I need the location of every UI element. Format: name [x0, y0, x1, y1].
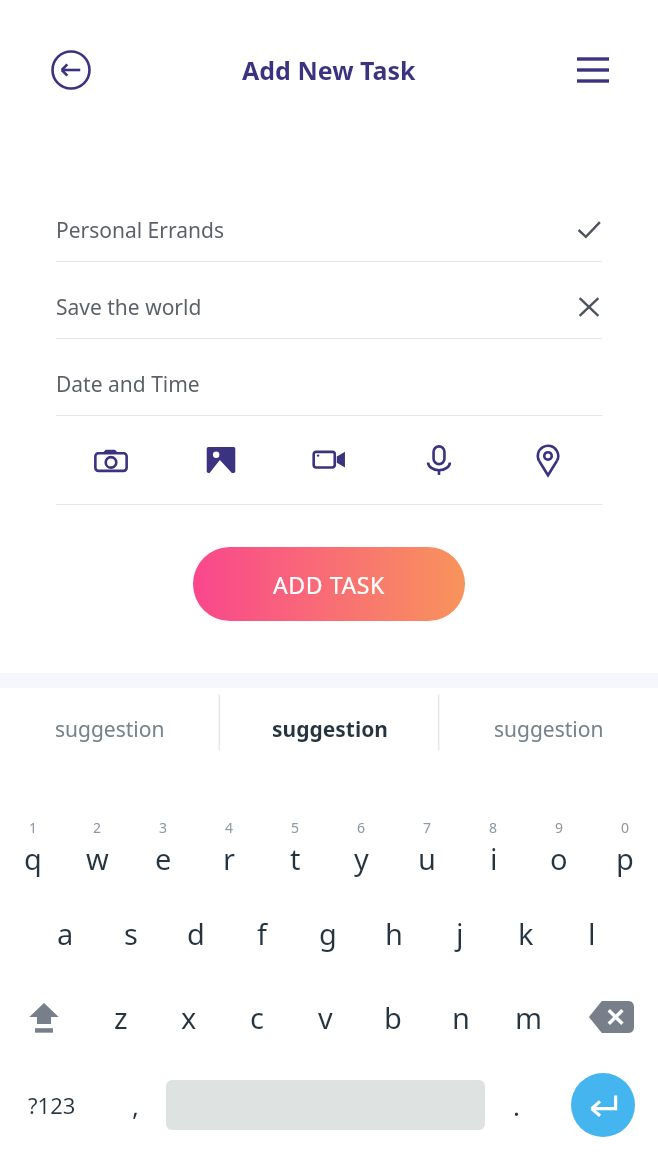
button[interactable]: . [485, 1068, 547, 1142]
staticText: j [456, 914, 464, 953]
button[interactable]: z [87, 988, 155, 1046]
button[interactable]: Date and Time [56, 361, 602, 416]
staticText: . [513, 1088, 520, 1123]
staticText: Save the world [56, 293, 576, 322]
staticText: 0 [621, 818, 630, 837]
button[interactable]: x [155, 988, 223, 1046]
button[interactable]: suggestion [220, 688, 439, 770]
staticText: a [57, 914, 74, 953]
button[interactable]: g [295, 906, 361, 960]
staticText: y [354, 839, 369, 878]
staticText: t [290, 839, 301, 878]
staticText: , [132, 1088, 139, 1123]
staticText: suggestion [272, 715, 388, 744]
staticText: g [319, 914, 337, 953]
button[interactable]: 0 [592, 818, 658, 878]
staticText: 9 [555, 818, 564, 837]
staticText: o [550, 839, 568, 878]
staticText: 1 [29, 818, 38, 837]
staticText: 4 [225, 818, 234, 837]
button[interactable]: Video [275, 416, 384, 504]
staticText: Personal Errands [56, 216, 576, 245]
button[interactable]: 6 [328, 818, 394, 878]
button[interactable]: s [98, 906, 163, 960]
button[interactable]: 2 [65, 818, 130, 878]
button[interactable]: Enter [547, 1068, 658, 1142]
button[interactable]: Shift [0, 988, 87, 1046]
staticText: u [418, 839, 436, 878]
staticText: n [452, 998, 470, 1037]
button[interactable]: c [223, 988, 291, 1046]
button[interactable]: 4 [196, 818, 262, 878]
staticText: suggestion [494, 715, 604, 744]
staticText: d [187, 914, 205, 953]
button[interactable]: j [427, 906, 493, 960]
staticText: Date and Time [56, 370, 602, 399]
button[interactable]: Camera [56, 416, 166, 504]
button[interactable]: k [493, 906, 559, 960]
staticText: k [518, 914, 534, 953]
staticText: i [490, 839, 498, 878]
button[interactable]: 5 [262, 818, 328, 878]
staticText: z [114, 998, 128, 1037]
button[interactable]: h [361, 906, 427, 960]
button[interactable]: Backspace [563, 988, 658, 1046]
staticText: s [124, 914, 138, 953]
button[interactable]: , [104, 1068, 166, 1142]
staticText: v [318, 998, 333, 1037]
staticText: f [257, 914, 267, 953]
button[interactable]: 3 [130, 818, 196, 878]
button[interactable]: b [359, 988, 427, 1046]
button[interactable]: ADD TASK [193, 547, 465, 621]
button[interactable]: Menu [564, 41, 622, 99]
button[interactable]: 8 [460, 818, 526, 878]
button[interactable]: Personal Errands [56, 207, 602, 262]
staticText: b [384, 998, 402, 1037]
button[interactable]: v [291, 988, 359, 1046]
button[interactable]: 1 [0, 818, 65, 878]
staticText: 8 [489, 818, 498, 837]
staticText: 7 [423, 818, 432, 837]
staticText: p [616, 839, 634, 878]
staticText: 2 [93, 818, 102, 837]
button[interactable]: Location [493, 416, 602, 504]
button[interactable]: 7 [394, 818, 460, 878]
staticText: 6 [357, 818, 366, 837]
button[interactable]: a [33, 906, 98, 960]
staticText: suggestion [55, 715, 165, 744]
staticText: 5 [291, 818, 300, 837]
button[interactable]: n [427, 988, 495, 1046]
button[interactable]: d [163, 906, 229, 960]
staticText: l [588, 914, 596, 953]
staticText: h [385, 914, 403, 953]
button[interactable]: Back [40, 39, 102, 101]
button[interactable]: Save the world [56, 284, 602, 339]
staticText: r [223, 839, 235, 878]
staticText: Add New Task [242, 53, 416, 87]
button[interactable]: ?123 [0, 1068, 104, 1142]
staticText: 3 [159, 818, 168, 837]
button[interactable]: suggestion [439, 688, 658, 770]
staticText: ADD TASK [273, 569, 385, 600]
staticText: e [155, 839, 172, 878]
button[interactable]: 9 [526, 818, 592, 878]
staticText: x [181, 998, 197, 1037]
button[interactable]: suggestion [0, 688, 220, 770]
button[interactable]: Gallery [166, 416, 275, 504]
button[interactable]: m [495, 988, 563, 1046]
staticText: q [24, 839, 42, 878]
button[interactable]: f [229, 906, 295, 960]
staticText: w [86, 839, 109, 878]
button[interactable]: Voice [384, 416, 493, 504]
staticText: ?123 [28, 1090, 76, 1120]
staticText: m [515, 998, 543, 1037]
staticText: c [250, 998, 264, 1037]
button[interactable]: l [559, 906, 625, 960]
